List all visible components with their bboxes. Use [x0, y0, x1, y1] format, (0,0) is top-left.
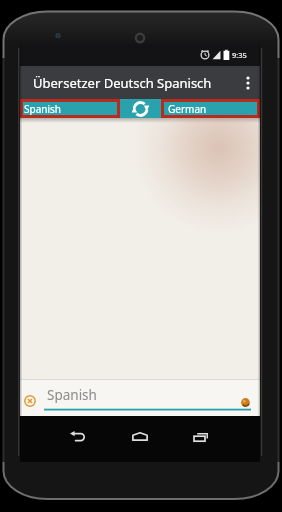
- button[interactable]: [239, 396, 252, 409]
- staticText: Spanish: [47, 386, 97, 403]
- button[interactable]: [23, 394, 37, 408]
- button[interactable]: [126, 423, 154, 450]
- button[interactable]: Spanish: [23, 102, 117, 115]
- staticText: 9:35: [232, 50, 247, 60]
- button[interactable]: [64, 423, 92, 450]
- button[interactable]: [236, 71, 260, 95]
- button[interactable]: German: [164, 102, 257, 115]
- staticText: German: [168, 102, 207, 115]
- button[interactable]: Spanish: [47, 386, 237, 403]
- staticText: Übersetzer Deutsch Spanisch: [33, 74, 212, 92]
- button[interactable]: [120, 99, 161, 118]
- button[interactable]: [186, 423, 214, 450]
- staticText: Spanish: [24, 102, 61, 115]
